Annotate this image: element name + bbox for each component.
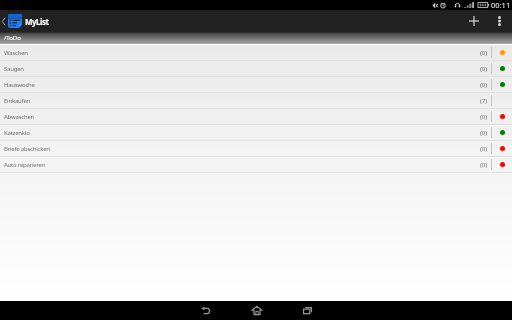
- staticText: Saugen: [4, 65, 480, 73]
- staticText: (0): [480, 81, 488, 89]
- button[interactable]: Waschen: [0, 45, 512, 61]
- button[interactable]: Saugen: [0, 61, 512, 77]
- button[interactable]: Navigate up: [0, 14, 53, 28]
- staticText: Einkaufen: [4, 97, 480, 105]
- button[interactable]: Recent apps: [282, 301, 333, 320]
- staticText: MyList: [25, 16, 49, 27]
- staticText: (7): [480, 97, 488, 105]
- button[interactable]: Katzenklo: [0, 125, 512, 141]
- other: Navigate up: [0, 14, 7, 28]
- staticText: 00:11: [491, 0, 511, 10]
- button[interactable]: Home: [231, 301, 282, 320]
- staticText: (0): [480, 129, 488, 137]
- staticText: (0): [480, 49, 488, 57]
- staticText: (0): [480, 145, 488, 153]
- button[interactable]: Add: [463, 10, 485, 32]
- staticText: (0): [480, 65, 488, 73]
- button[interactable]: Einkaufen: [0, 93, 512, 109]
- button[interactable]: More options: [490, 10, 508, 32]
- staticText: Abwaschen: [4, 113, 480, 121]
- button[interactable]: Briefe abschicken: [0, 141, 512, 157]
- staticText: Katzenklo: [4, 129, 480, 137]
- staticText: Auto reparieren: [4, 161, 480, 169]
- button[interactable]: Back: [180, 301, 231, 320]
- staticText: /ToDo: [4, 34, 21, 42]
- staticText: Briefe abschicken: [4, 145, 480, 153]
- staticText: (0): [480, 113, 488, 121]
- button[interactable]: Abwaschen: [0, 109, 512, 125]
- staticText: (0): [480, 161, 488, 169]
- button[interactable]: Hauswoche: [0, 77, 512, 93]
- staticText: Waschen: [4, 49, 480, 57]
- button[interactable]: Auto reparieren: [0, 157, 512, 173]
- staticText: Hauswoche: [4, 81, 480, 89]
